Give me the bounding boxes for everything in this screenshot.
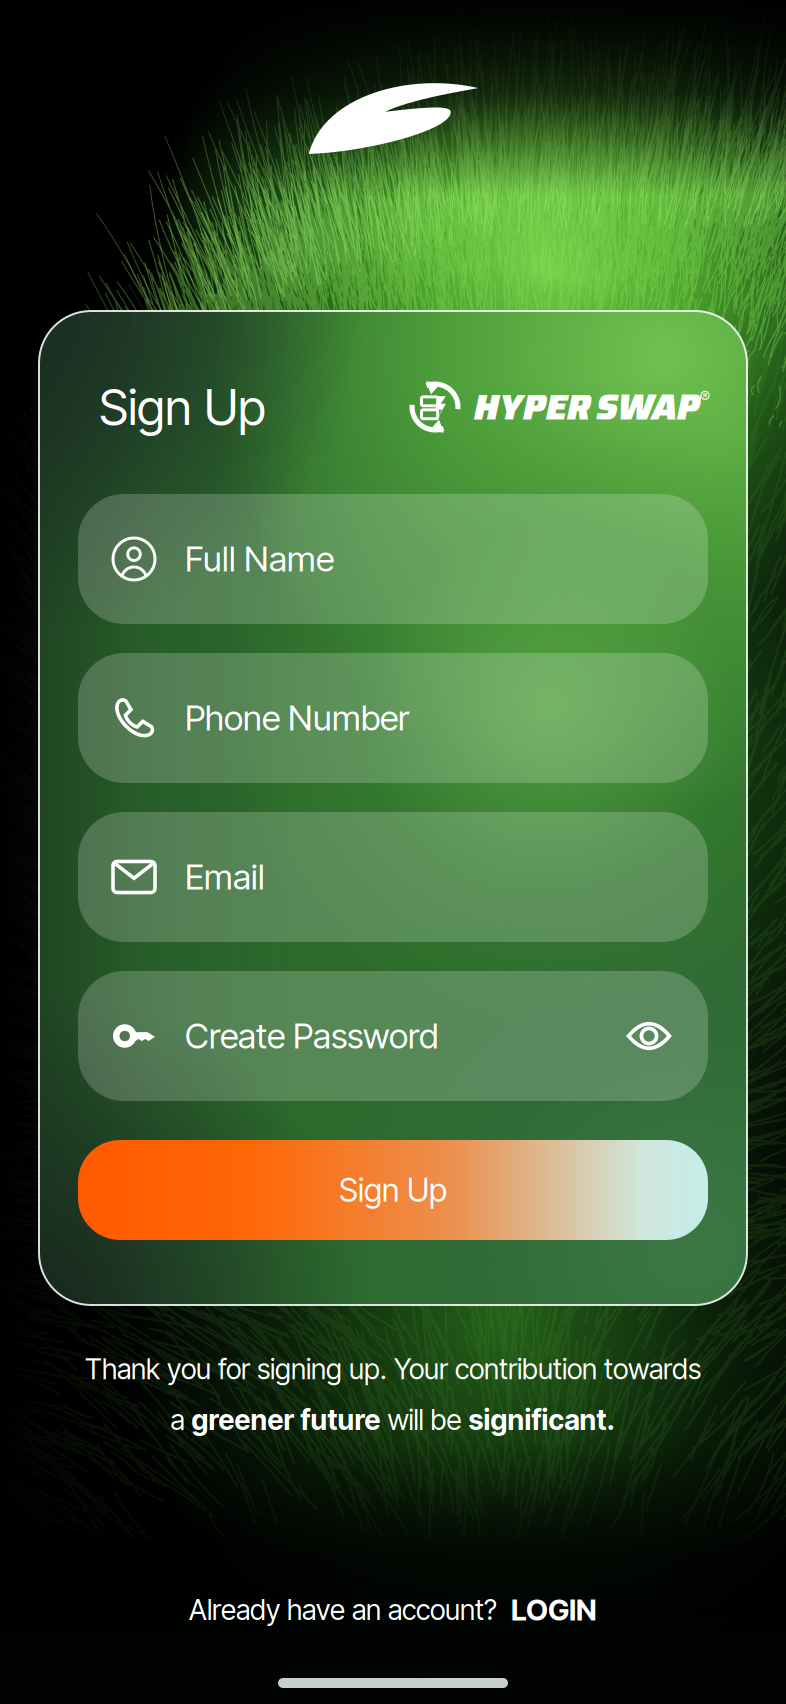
staticText: Sign Up (339, 1171, 447, 1209)
staticText: a (170, 1403, 191, 1437)
button[interactable]: Create Password (78, 971, 708, 1101)
button[interactable]: Sign Up (78, 1140, 708, 1240)
staticText: LOGIN (511, 1592, 597, 1627)
staticText: Email (185, 856, 265, 898)
staticText: HYPER (474, 379, 591, 435)
staticText: Already have an account? (189, 1593, 497, 1627)
staticText: Full Name (185, 538, 334, 580)
staticText: will be (380, 1403, 468, 1437)
staticText: ® (700, 387, 710, 407)
button[interactable]: Email (78, 812, 708, 942)
staticText: greener future (191, 1403, 380, 1437)
button[interactable]: Already have an account? (189, 1592, 597, 1627)
button[interactable]: Full Name (78, 494, 708, 624)
staticText: significant. (468, 1403, 615, 1437)
staticText: Thank you for signing up. Your contribut… (85, 1352, 701, 1386)
staticText: Phone Number (185, 697, 409, 739)
staticText: SWAP (596, 379, 700, 435)
staticText: Sign Up (99, 377, 266, 437)
staticText: Create Password (185, 1015, 438, 1057)
button[interactable]: Phone Number (78, 653, 708, 783)
